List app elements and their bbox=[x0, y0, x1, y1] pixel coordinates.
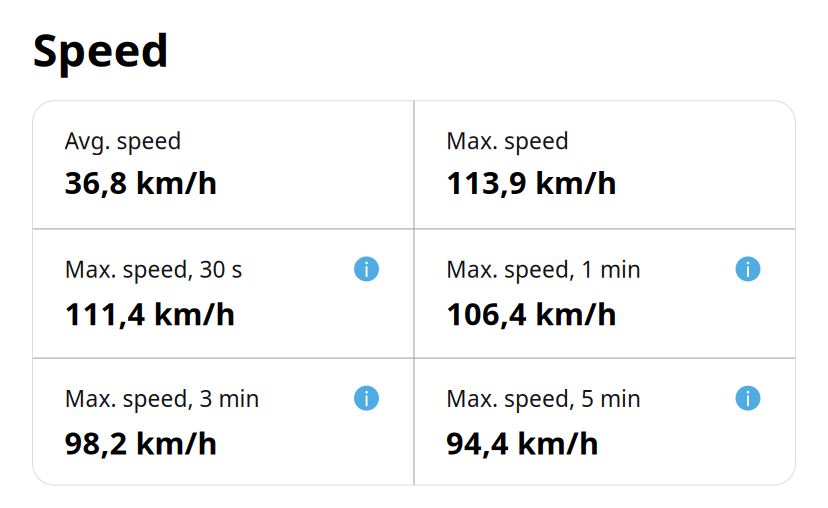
button[interactable]: About Max. speed, 3 min bbox=[354, 386, 379, 411]
button[interactable]: About Max. speed, 5 min bbox=[735, 386, 760, 411]
staticText: 106,4 km/h bbox=[446, 293, 617, 334]
staticText: 36,8 km/h bbox=[64, 162, 217, 202]
staticText: 94,4 km/h bbox=[446, 422, 599, 463]
staticText: 111,4 km/h bbox=[64, 293, 235, 334]
staticText: Max. speed, 3 min bbox=[64, 383, 259, 413]
staticText: Max. speed, 30 s bbox=[64, 254, 242, 284]
staticText: Avg. speed bbox=[64, 125, 181, 155]
staticText: Max. speed bbox=[446, 125, 569, 155]
staticText: 113,9 km/h bbox=[446, 162, 617, 202]
staticText: Speed bbox=[32, 19, 169, 79]
staticText: Max. speed, 5 min bbox=[446, 383, 641, 413]
button[interactable]: About Max. speed, 30 s bbox=[354, 256, 379, 281]
button[interactable]: About Max. speed, 1 min bbox=[735, 256, 760, 281]
staticText: 98,2 km/h bbox=[64, 422, 217, 463]
staticText: Max. speed, 1 min bbox=[446, 254, 641, 284]
